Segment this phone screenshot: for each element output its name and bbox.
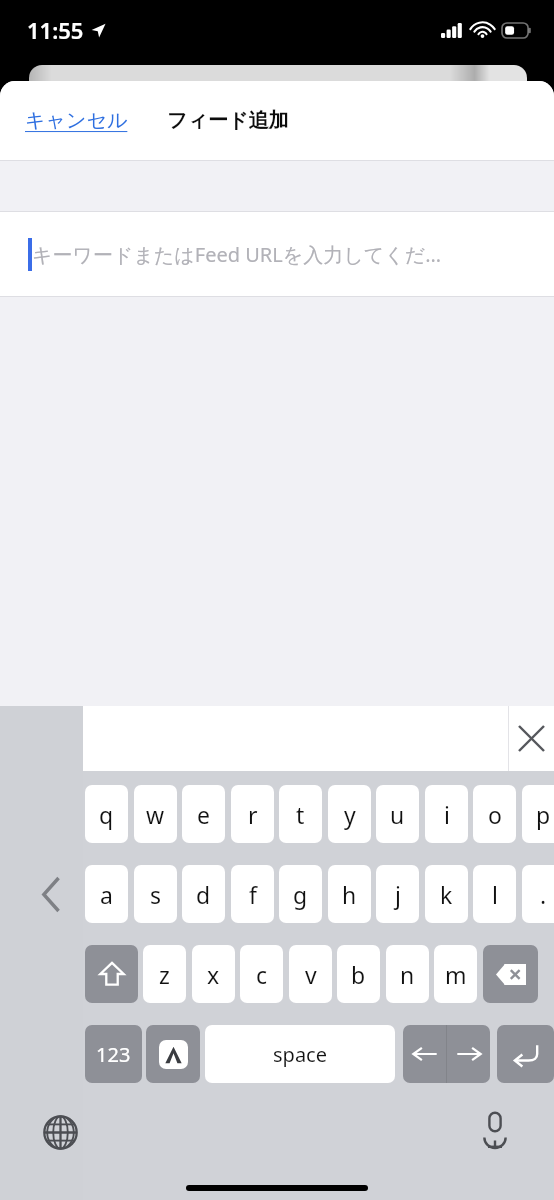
button[interactable]: y bbox=[328, 785, 371, 843]
button[interactable]: Change keyboard bbox=[36, 1108, 84, 1156]
button[interactable]: キャンセル bbox=[25, 108, 128, 133]
staticText: i bbox=[444, 799, 450, 830]
button[interactable]: o bbox=[473, 785, 516, 843]
button[interactable]: t bbox=[279, 785, 322, 843]
button[interactable]: Close suggestions bbox=[508, 706, 554, 771]
staticText: . bbox=[540, 879, 547, 910]
button[interactable]: p bbox=[522, 785, 554, 843]
staticText: h bbox=[342, 879, 357, 910]
button[interactable]: c bbox=[240, 945, 283, 1003]
staticText: m bbox=[445, 959, 467, 990]
staticText: q bbox=[99, 799, 114, 830]
staticText: k bbox=[440, 879, 453, 910]
button[interactable]: r bbox=[231, 785, 274, 843]
button[interactable]: Shift bbox=[85, 945, 138, 1003]
button[interactable]: b bbox=[337, 945, 380, 1003]
button[interactable]: Input method bbox=[146, 1025, 200, 1083]
staticText: s bbox=[150, 879, 162, 910]
button[interactable]: n bbox=[386, 945, 429, 1003]
button[interactable]: i bbox=[425, 785, 468, 843]
button[interactable]: s bbox=[134, 865, 177, 923]
button[interactable]: . bbox=[522, 865, 554, 923]
staticText: z bbox=[159, 959, 170, 990]
button[interactable]: a bbox=[85, 865, 128, 923]
staticText: n bbox=[400, 959, 415, 990]
button[interactable]: Previous bbox=[26, 865, 76, 923]
button[interactable]: d bbox=[182, 865, 225, 923]
button[interactable]: e bbox=[182, 785, 225, 843]
button[interactable]: Delete bbox=[483, 945, 538, 1003]
button[interactable]: Move left bbox=[403, 1025, 446, 1083]
staticText: x bbox=[207, 959, 220, 990]
staticText: 11:55 bbox=[27, 15, 84, 45]
staticText: space bbox=[273, 1041, 327, 1068]
staticText: o bbox=[488, 799, 502, 830]
staticText: キャンセル bbox=[25, 108, 128, 133]
staticText: キーワードまたはFeed URLを入力してくだ… bbox=[32, 241, 441, 268]
staticText: c bbox=[256, 959, 268, 990]
staticText: u bbox=[390, 799, 405, 830]
button[interactable]: Dictation bbox=[471, 1106, 519, 1154]
button[interactable]: キーワードまたはFeed URLを入力してくだ… bbox=[0, 212, 554, 296]
staticText: l bbox=[492, 879, 498, 910]
button[interactable]: Return bbox=[497, 1025, 554, 1083]
staticText: y bbox=[344, 799, 356, 830]
staticText: 123 bbox=[96, 1041, 131, 1068]
button[interactable]: l bbox=[473, 865, 516, 923]
staticText: f bbox=[249, 879, 257, 910]
staticText: d bbox=[196, 879, 211, 910]
staticText: g bbox=[293, 879, 308, 910]
staticText: e bbox=[197, 799, 210, 830]
button[interactable]: x bbox=[192, 945, 235, 1003]
button[interactable]: m bbox=[434, 945, 477, 1003]
staticText: a bbox=[100, 879, 113, 910]
button[interactable]: w bbox=[134, 785, 177, 843]
button[interactable]: z bbox=[143, 945, 186, 1003]
button[interactable]: 123 bbox=[85, 1025, 142, 1083]
button[interactable]: j bbox=[376, 865, 419, 923]
staticText: t bbox=[296, 799, 305, 830]
button[interactable]: Move right bbox=[447, 1025, 490, 1083]
staticText: b bbox=[351, 959, 366, 990]
staticText: j bbox=[395, 879, 401, 910]
button[interactable]: u bbox=[376, 785, 419, 843]
button[interactable]: g bbox=[279, 865, 322, 923]
button[interactable]: q bbox=[85, 785, 128, 843]
staticText: p bbox=[536, 799, 551, 830]
staticText: w bbox=[146, 799, 165, 830]
button[interactable]: f bbox=[231, 865, 274, 923]
button[interactable]: v bbox=[289, 945, 332, 1003]
staticText: フィード追加 bbox=[167, 108, 289, 133]
staticText: v bbox=[305, 959, 317, 990]
button[interactable]: k bbox=[425, 865, 468, 923]
button[interactable]: space bbox=[205, 1025, 395, 1083]
staticText: r bbox=[248, 799, 258, 830]
button[interactable]: h bbox=[328, 865, 371, 923]
